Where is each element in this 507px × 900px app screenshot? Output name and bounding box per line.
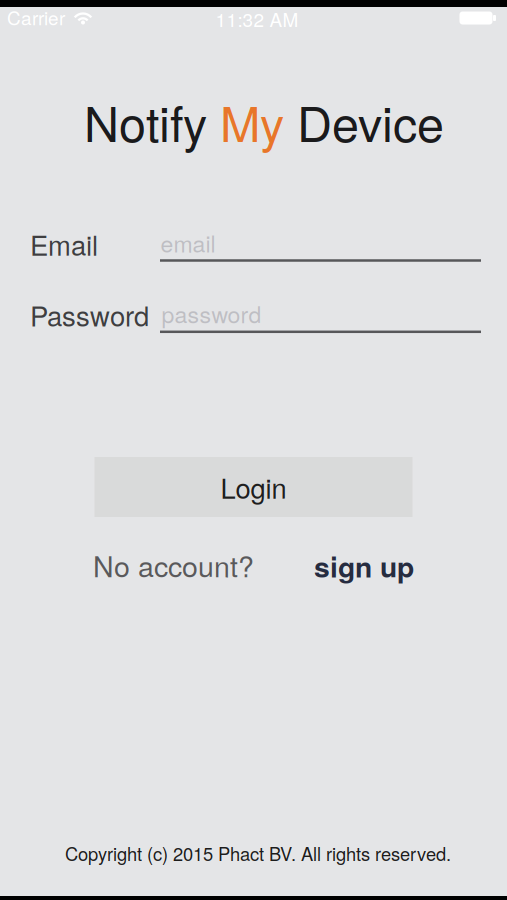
staticText: sign up [314, 546, 414, 586]
staticText: My [220, 86, 284, 156]
button[interactable] [160, 230, 481, 262]
staticText: Copyright (c) 2015 Phact BV. All rights … [65, 840, 451, 866]
staticText: Device [284, 86, 444, 156]
staticText: password [161, 297, 261, 330]
button[interactable]: Login [94, 457, 412, 517]
staticText: email [160, 226, 215, 259]
staticText: Notify [84, 86, 220, 156]
staticText: No account? [93, 545, 254, 585]
staticText: Email [30, 224, 98, 264]
staticText: Password [30, 295, 149, 334]
button[interactable] [160, 301, 481, 333]
staticText: 11:32 AM [215, 5, 298, 32]
staticText: Login [220, 467, 286, 506]
staticText: Carrier [7, 3, 65, 30]
button[interactable]: sign up [214, 546, 414, 586]
